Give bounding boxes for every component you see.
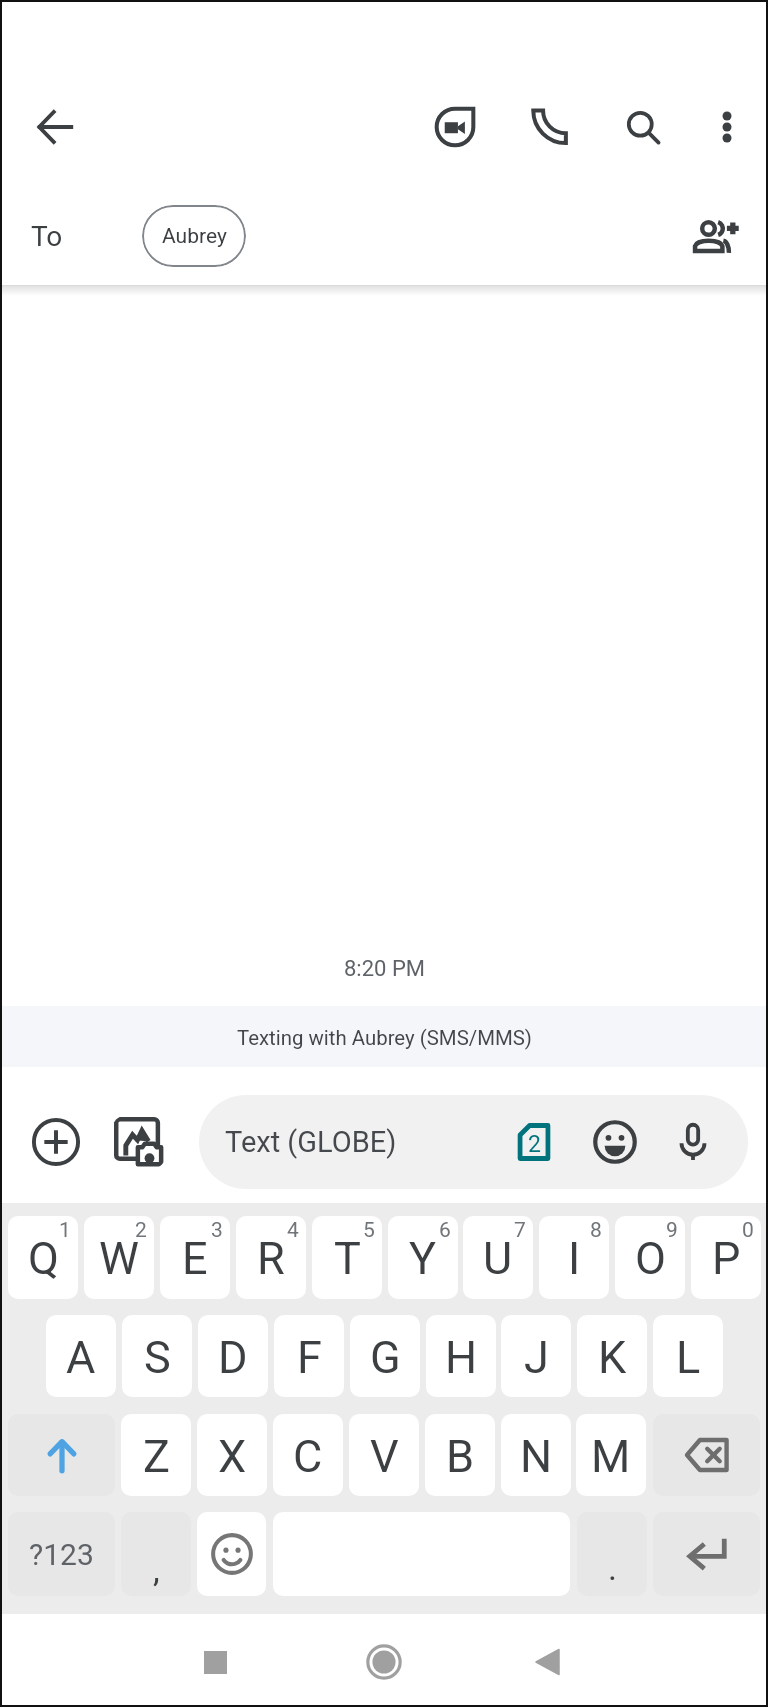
button[interactable]: Back	[24, 96, 86, 158]
staticText: J	[524, 1331, 549, 1384]
button[interactable]: Emoji keyboard	[197, 1512, 266, 1596]
staticText: Z	[143, 1430, 170, 1483]
staticText: W	[99, 1232, 139, 1285]
staticText: Q	[28, 1232, 59, 1285]
button[interactable]: Add people	[686, 206, 748, 268]
staticText: 4	[287, 1218, 299, 1243]
button[interactable]: B	[425, 1414, 495, 1496]
staticText: Texting with Aubrey (SMS/MMS)	[237, 1026, 532, 1050]
button[interactable]: O	[615, 1216, 685, 1299]
staticText: T	[334, 1232, 361, 1285]
button[interactable]: P	[691, 1216, 761, 1299]
button[interactable]: G	[350, 1315, 420, 1397]
button[interactable]: S	[122, 1315, 192, 1397]
button[interactable]: Emoji	[583, 1110, 647, 1174]
button[interactable]: M	[576, 1414, 646, 1496]
button[interactable]: Home	[349, 1627, 419, 1697]
button[interactable]: I	[539, 1216, 609, 1299]
button[interactable]: A	[46, 1315, 116, 1397]
button[interactable]: U	[463, 1216, 533, 1299]
button[interactable]: T	[312, 1216, 382, 1299]
staticText: 9	[666, 1218, 678, 1243]
staticText: .	[608, 1548, 617, 1588]
staticText: B	[446, 1430, 475, 1483]
button[interactable]: R	[236, 1216, 306, 1299]
staticText: ,	[153, 1550, 160, 1590]
button[interactable]: Add attachment	[22, 1108, 90, 1176]
button[interactable]: Text (GLOBE)	[199, 1095, 748, 1189]
button[interactable]: V	[349, 1414, 419, 1496]
staticText: To	[31, 220, 63, 253]
staticText: L	[676, 1331, 701, 1384]
button[interactable]: Voice input	[661, 1110, 725, 1174]
staticText: F	[297, 1331, 322, 1384]
staticText: E	[182, 1232, 208, 1285]
staticText: I	[568, 1232, 581, 1285]
button[interactable]: C	[273, 1414, 343, 1496]
button[interactable]: Enter	[653, 1512, 760, 1596]
button[interactable]: X	[197, 1414, 267, 1496]
staticText: N	[520, 1430, 553, 1483]
staticText: D	[218, 1331, 248, 1384]
button[interactable]: Open camera	[107, 1110, 171, 1174]
staticText: 8	[590, 1218, 602, 1243]
staticText: Text (GLOBE)	[225, 1125, 397, 1159]
button[interactable]: D	[198, 1315, 268, 1397]
staticText: P	[712, 1232, 741, 1285]
staticText: 7	[514, 1218, 526, 1243]
staticText: S	[144, 1331, 171, 1384]
staticText: 8:20 PM	[344, 956, 425, 982]
button[interactable]: Search	[612, 96, 674, 158]
staticText: 1	[59, 1218, 71, 1243]
staticText: K	[598, 1331, 627, 1384]
button[interactable]: L	[653, 1315, 723, 1397]
button[interactable]: J	[501, 1315, 571, 1397]
staticText: C	[293, 1430, 323, 1483]
button[interactable]: Call	[518, 96, 580, 158]
button[interactable]: F	[274, 1315, 344, 1397]
staticText: G	[370, 1331, 401, 1384]
staticText: Y	[409, 1232, 437, 1285]
staticText: A	[66, 1331, 96, 1384]
button[interactable]: Shift	[8, 1414, 115, 1496]
staticText: 2	[135, 1218, 147, 1243]
staticText: U	[483, 1232, 513, 1285]
button[interactable]: H	[426, 1315, 496, 1397]
staticText: M	[591, 1430, 631, 1483]
button[interactable]: W	[84, 1216, 154, 1299]
staticText: X	[218, 1430, 247, 1483]
button[interactable]: Symbols	[8, 1512, 115, 1596]
button[interactable]: SIM 2	[502, 1110, 566, 1174]
staticText: 6	[439, 1218, 451, 1243]
button[interactable]: E	[160, 1216, 230, 1299]
staticText: 0	[742, 1218, 754, 1243]
button[interactable]: Video call	[424, 96, 486, 158]
button[interactable]: Q	[8, 1216, 78, 1299]
button[interactable]: Z	[121, 1414, 191, 1496]
button[interactable]: Back	[518, 1630, 582, 1694]
button[interactable]: Aubrey	[142, 205, 246, 267]
staticText: 2	[528, 1131, 541, 1158]
button[interactable]: Recents	[183, 1630, 247, 1694]
staticText: V	[370, 1430, 399, 1483]
button[interactable]: Period	[577, 1512, 647, 1596]
button[interactable]: N	[501, 1414, 571, 1496]
staticText: O	[635, 1232, 666, 1285]
staticText: H	[445, 1331, 478, 1384]
button[interactable]: Comma	[121, 1512, 191, 1596]
staticText: Aubrey	[162, 224, 227, 249]
staticText: 3	[211, 1218, 223, 1243]
button[interactable]: Backspace	[653, 1414, 760, 1496]
button[interactable]: Y	[388, 1216, 458, 1299]
button[interactable]: K	[577, 1315, 647, 1397]
staticText: ?123	[29, 1537, 94, 1572]
staticText: 5	[363, 1218, 375, 1243]
button[interactable]: More options	[696, 96, 758, 158]
staticText: R	[257, 1232, 285, 1285]
